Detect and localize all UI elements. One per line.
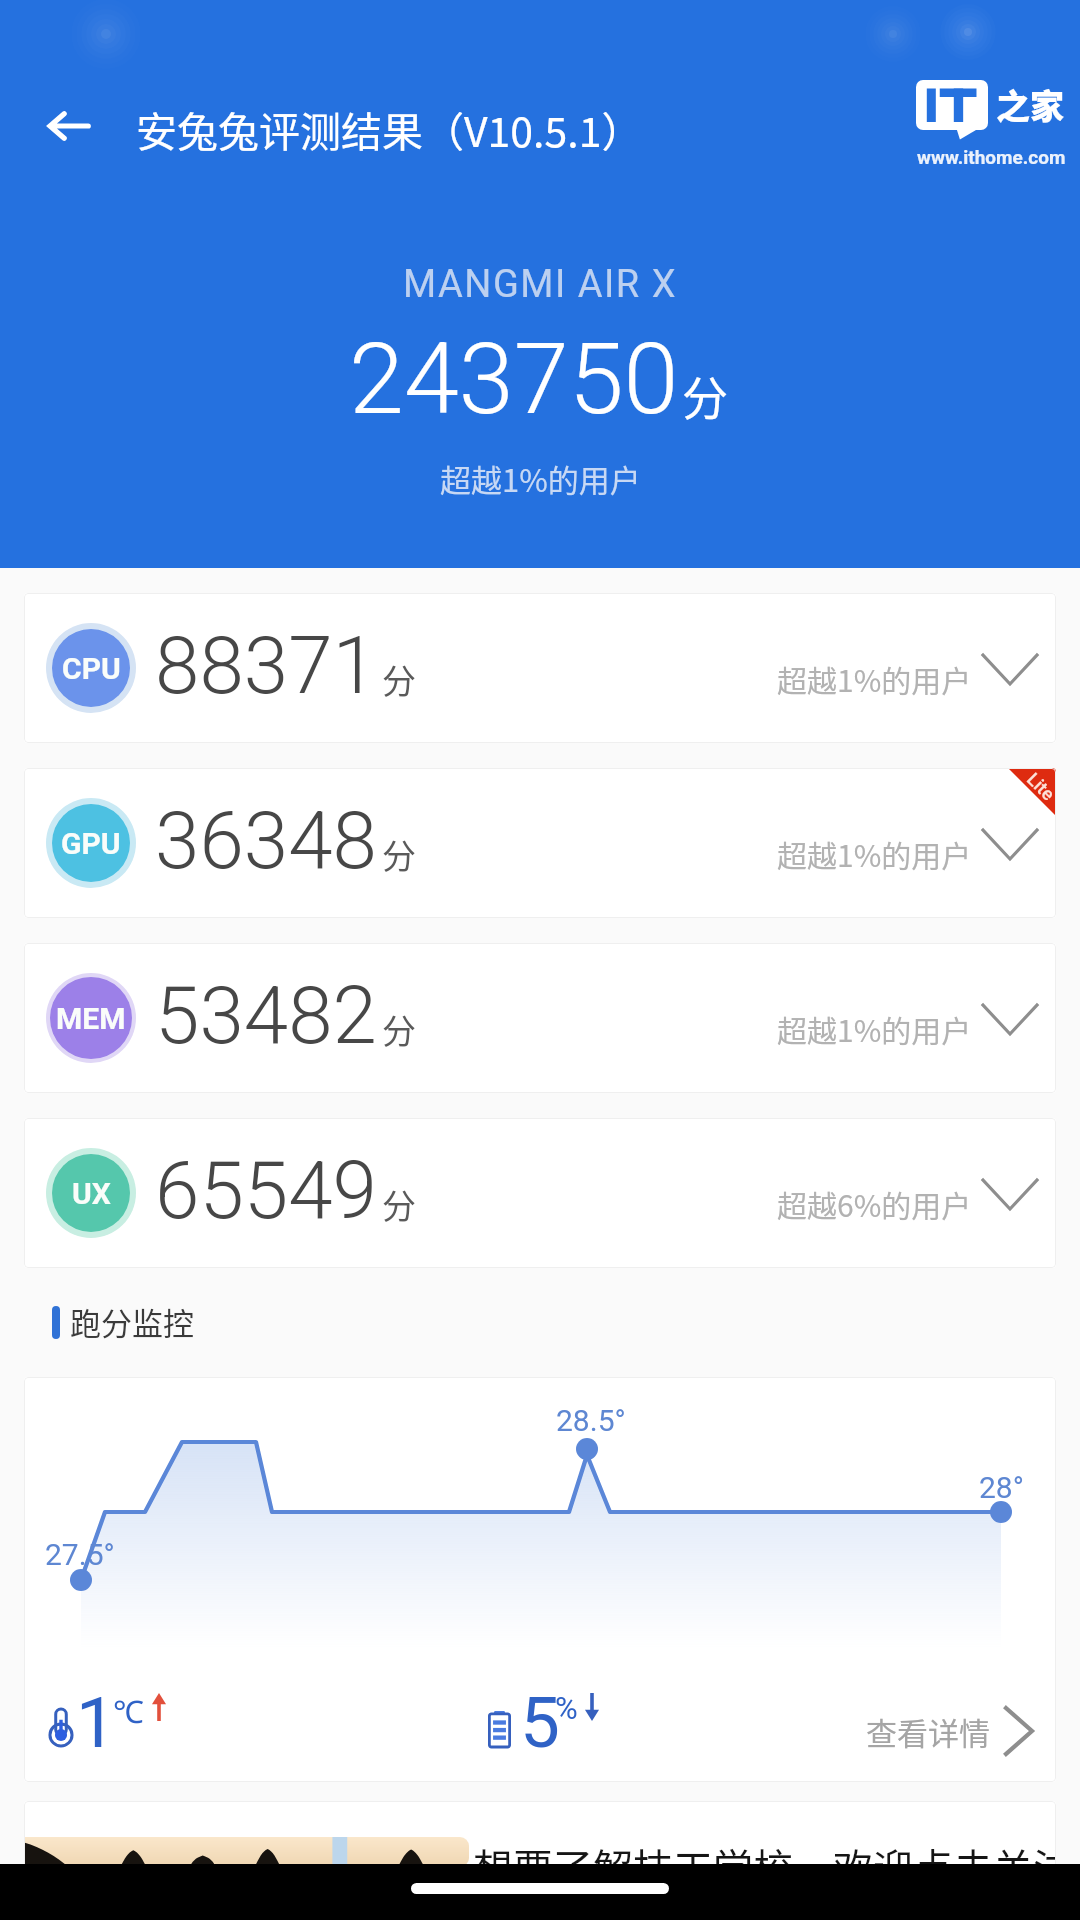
staticText: CPU — [62, 651, 121, 686]
staticText: 分 — [382, 1005, 416, 1054]
staticText: 5 — [520, 1681, 560, 1764]
staticText: 53482 — [155, 969, 377, 1059]
staticText: 超越6%的用户 — [777, 1182, 972, 1225]
staticText: 分 — [382, 1180, 416, 1229]
staticText: www.ithome.com — [917, 146, 1065, 168]
staticText: 超越1%的用户 — [777, 832, 972, 875]
staticText: 分 — [382, 830, 416, 879]
staticText: 分 — [382, 655, 416, 704]
staticText: 超越1%的用户 — [440, 456, 641, 501]
button[interactable]: 查看详情 — [853, 1686, 1034, 1776]
staticText: 想要了解技工学校，欢迎点击关注 — [473, 1837, 1056, 1895]
staticText: 36348 — [155, 794, 377, 884]
button[interactable]: CPU — [24, 593, 1056, 743]
staticText: 超越1%的用户 — [777, 657, 972, 700]
staticText: 28° — [979, 1470, 1024, 1505]
staticText: 超越1%的用户 — [777, 1007, 972, 1050]
staticText: 88371 — [155, 619, 377, 709]
staticText: 跑分监控 — [70, 1299, 194, 1344]
staticText: 65549 — [155, 1144, 377, 1234]
staticText: 分 — [682, 362, 728, 429]
staticText: 安兔兔评测结果（V10.5.1） — [136, 99, 643, 158]
staticText: Lite — [1023, 768, 1056, 805]
staticText: 28.5° — [556, 1403, 626, 1438]
staticText: % — [555, 1690, 578, 1726]
staticText: 1 — [76, 1681, 116, 1764]
button[interactable]: UX — [24, 1118, 1056, 1268]
button[interactable]: 想要了解技工学校，欢迎点击关注 — [24, 1801, 1056, 1920]
staticText: GPU — [61, 826, 121, 861]
staticText: ℃ — [113, 1690, 144, 1732]
staticText: 27.5° — [45, 1537, 115, 1572]
staticText: 查看详情 — [866, 1709, 990, 1754]
staticText: MANGMI AIR X — [403, 262, 678, 307]
button[interactable]: Back — [30, 88, 106, 164]
button[interactable]: GPU — [24, 768, 1056, 918]
staticText: UX — [72, 1176, 111, 1211]
staticText: 243750 — [349, 321, 679, 437]
staticText: 之家 — [996, 80, 1064, 129]
staticText: MEM — [56, 1001, 126, 1036]
button[interactable]: MEM — [24, 943, 1056, 1093]
